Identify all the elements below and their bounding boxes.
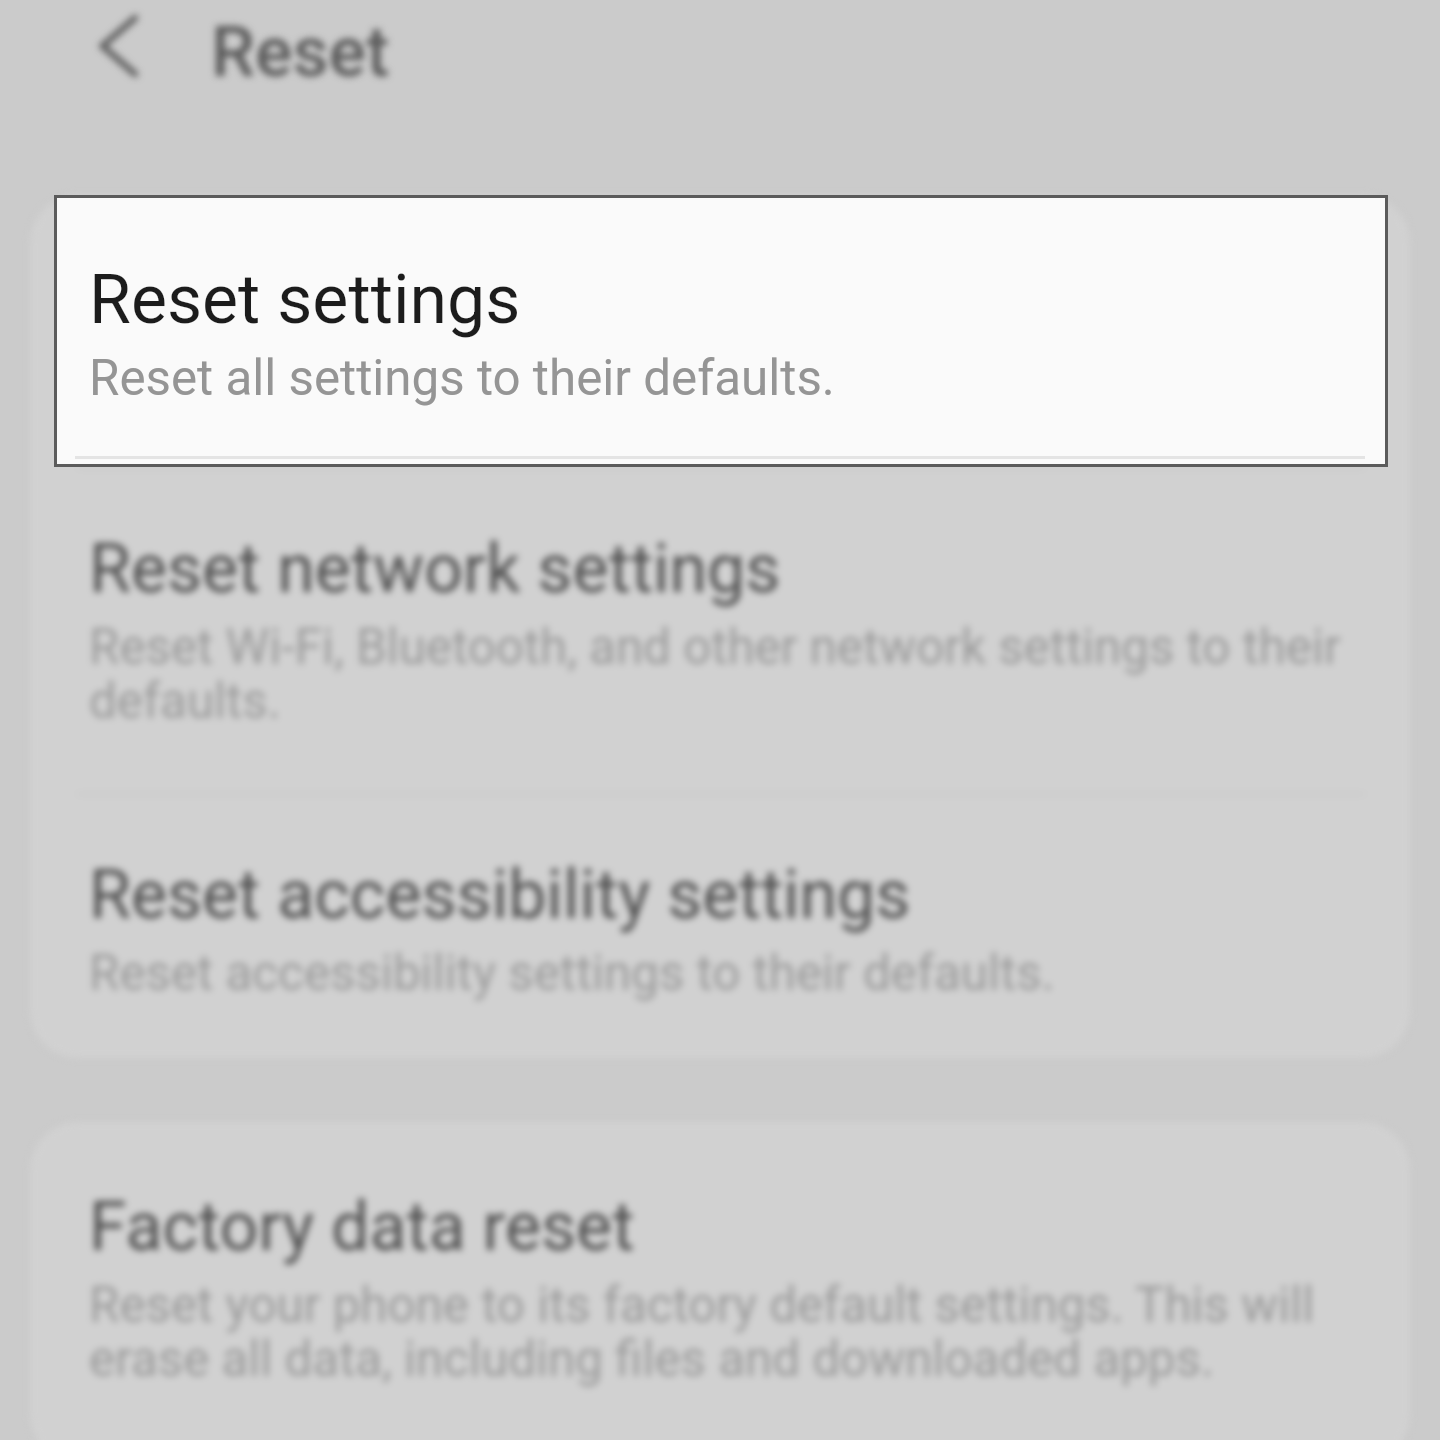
staticText: Factory data reset	[89, 1187, 635, 1267]
staticText: Reset all settings to their defaults.	[89, 353, 835, 407]
staticText: Reset all settings to their defaults.	[89, 353, 1355, 407]
button[interactable]: Reset settings	[54, 195, 1386, 467]
staticText: Reset accessibility settings	[89, 855, 911, 935]
button[interactable]: Back	[58, 0, 154, 96]
staticText: Reset settings	[89, 260, 521, 340]
staticText: Reset	[211, 11, 390, 93]
staticText: Reset Wi-Fi, Bluetooth, and other networ…	[89, 622, 1355, 730]
staticText: Reset your phone to its factory default …	[89, 1280, 1355, 1388]
button[interactable]: Reset accessibility settings	[54, 795, 1386, 1058]
staticText: Reset accessibility settings to their de…	[89, 948, 1355, 1002]
button[interactable]: Reset settings	[54, 195, 1388, 467]
staticText: Reset network settings	[89, 529, 781, 609]
button[interactable]: Factory data reset	[54, 1122, 1386, 1440]
button[interactable]: Reset network settings	[54, 469, 1386, 793]
staticText: Reset settings	[89, 260, 521, 340]
